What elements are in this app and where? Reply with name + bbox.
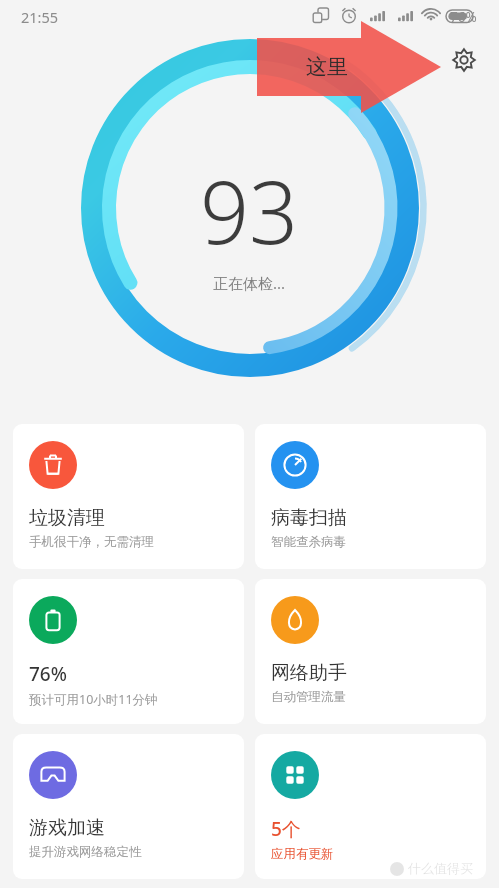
staticText: 应用有更新 (271, 846, 334, 862)
staticText: 智能查杀病毒 (271, 534, 346, 550)
staticText: 垃圾清理 (29, 506, 105, 530)
staticText: 游戏加速 (29, 816, 105, 840)
staticText: 5个 (271, 816, 301, 842)
staticText: 提升游戏网络稳定性 (29, 844, 142, 860)
button[interactable]: 游戏加速 (13, 734, 244, 879)
staticText: 网络助手 (271, 661, 347, 685)
button[interactable]: 76% (13, 579, 244, 724)
button[interactable]: 5个 (255, 734, 486, 879)
staticText: 21:55 (21, 7, 59, 27)
button[interactable]: 病毒扫描 (255, 424, 486, 569)
staticText: 手机很干净，无需清理 (29, 534, 154, 550)
staticText: 这里 (306, 54, 348, 80)
staticText: 76% (29, 661, 67, 687)
staticText: 预计可用10小时11分钟 (29, 691, 158, 708)
staticText: 76% (450, 8, 477, 26)
button[interactable]: 垃圾清理 (13, 424, 244, 569)
button[interactable]: Settings (446, 42, 482, 78)
staticText: 病毒扫描 (271, 506, 347, 530)
button[interactable]: 网络助手 (255, 579, 486, 724)
staticText: 什么值得买 (408, 860, 473, 876)
staticText: 正在体检... (213, 273, 286, 293)
staticText: 93 (200, 152, 299, 269)
staticText: 自动管理流量 (271, 689, 346, 705)
